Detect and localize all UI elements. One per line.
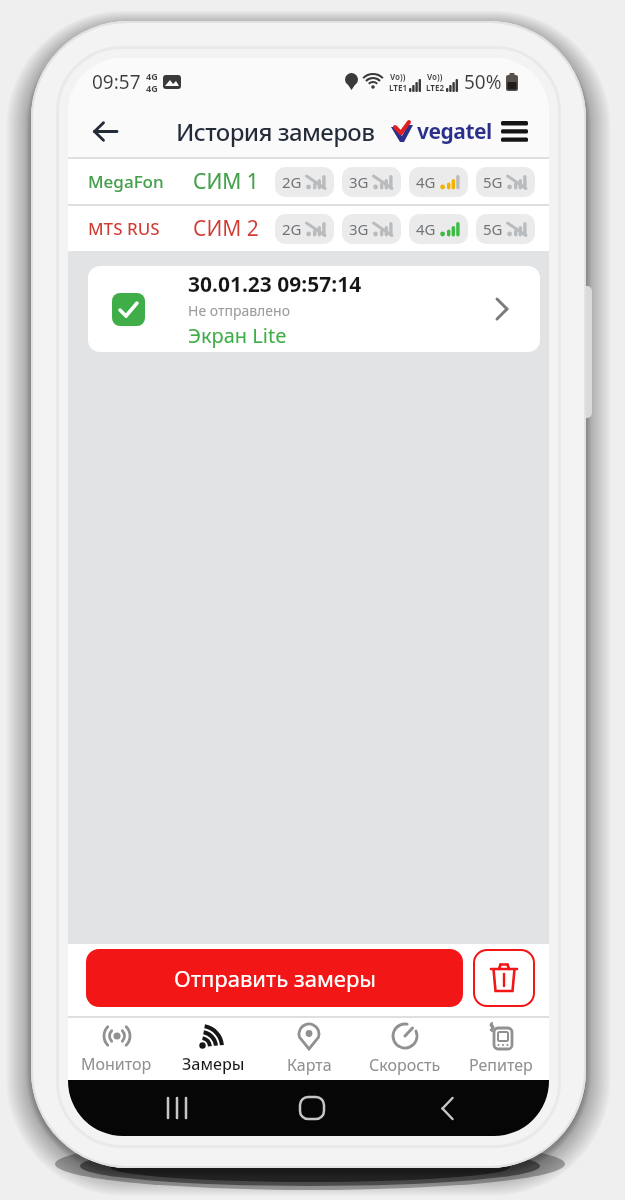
staticText: LTE2 xyxy=(426,82,444,93)
staticText: 4G xyxy=(146,70,158,82)
staticText: 4G xyxy=(146,82,158,94)
staticText: Экран Lite xyxy=(188,322,287,349)
staticText: СИМ 2 xyxy=(193,214,259,243)
staticText: 2G xyxy=(282,219,302,239)
button[interactable]: Репитер xyxy=(453,1018,549,1080)
staticText: LTE1 xyxy=(389,82,407,93)
staticText: 30.01.23 09:57:14 xyxy=(188,270,362,299)
staticText: 2G xyxy=(282,172,302,192)
staticText: История замеров xyxy=(176,115,375,148)
staticText: MTS RUS xyxy=(88,217,160,240)
staticText: 4G xyxy=(416,172,436,192)
button[interactable] xyxy=(88,113,124,149)
staticText: Отправить замеры xyxy=(174,963,376,993)
staticText: 09:57 xyxy=(92,69,141,95)
staticText: Карта xyxy=(287,1054,332,1076)
staticText: Замеры xyxy=(182,1053,245,1075)
button[interactable]: Монитор xyxy=(68,1018,165,1080)
button[interactable]: Карта xyxy=(261,1018,357,1080)
staticText: Vo)) xyxy=(390,71,406,82)
button[interactable]: Замеры xyxy=(165,1018,261,1080)
staticText: 50% xyxy=(464,69,502,95)
staticText: Скорость xyxy=(369,1054,441,1076)
staticText: 5G xyxy=(483,219,503,239)
button[interactable] xyxy=(499,116,529,146)
staticText: 3G xyxy=(349,172,369,192)
button[interactable] xyxy=(441,1097,454,1120)
staticText: Не отправлено xyxy=(188,301,290,320)
button[interactable] xyxy=(166,1098,188,1118)
button[interactable] xyxy=(299,1096,325,1120)
button[interactable]: Отправить замеры xyxy=(86,949,463,1007)
button[interactable]: Скорость xyxy=(357,1018,453,1080)
button[interactable] xyxy=(473,949,535,1007)
staticText: 5G xyxy=(483,172,503,192)
staticText: Vo)) xyxy=(427,71,443,82)
staticText: Монитор xyxy=(81,1053,152,1075)
staticText: СИМ 1 xyxy=(193,167,259,196)
staticText: Репитер xyxy=(469,1054,533,1076)
staticText: vegatel xyxy=(417,117,492,146)
staticText: 3G xyxy=(349,219,369,239)
staticText: 4G xyxy=(416,219,436,239)
staticText: MegaFon xyxy=(88,170,164,193)
button[interactable]: 30.01.23 09:57:14 xyxy=(112,266,508,352)
